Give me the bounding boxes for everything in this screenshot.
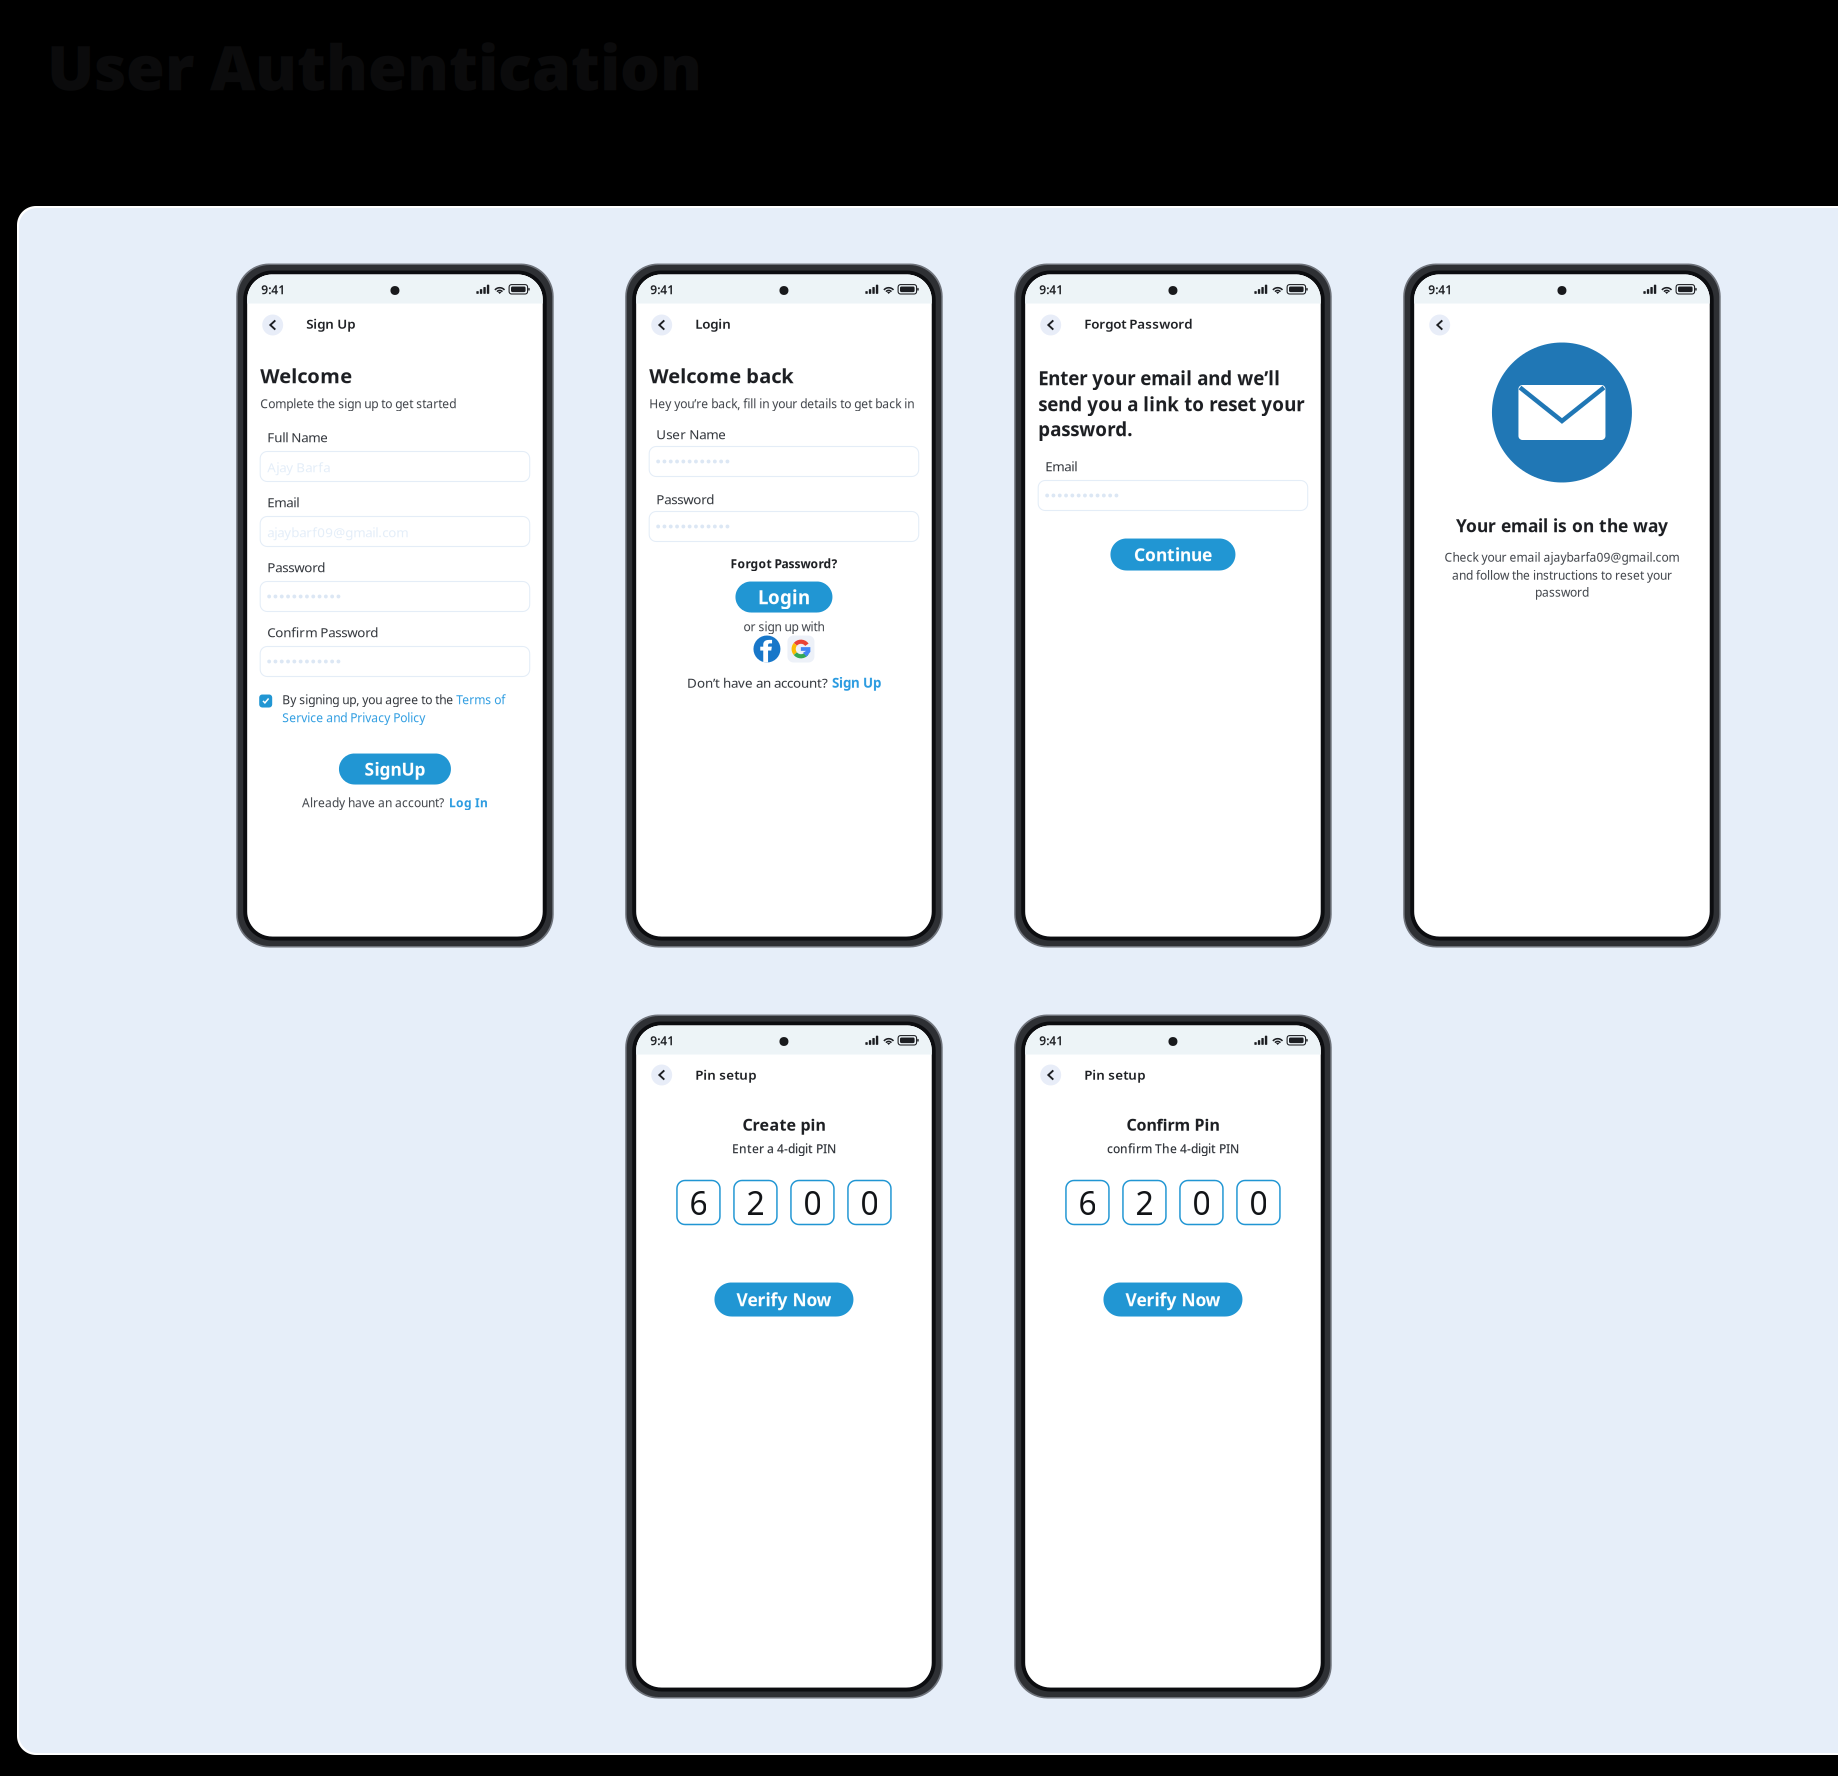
staticText: User Authentication — [47, 24, 702, 108]
staticText: 0 — [1192, 1181, 1210, 1224]
staticText: Forgot Password — [1084, 315, 1192, 332]
staticText: Confirm Password — [267, 623, 378, 641]
staticText: confirm The 4-digit PIN — [1107, 1140, 1239, 1156]
staticText: 0 — [803, 1181, 821, 1224]
staticText: 9:41 — [1039, 1032, 1063, 1048]
staticText: 0 — [1249, 1181, 1267, 1224]
staticText: Log In — [449, 794, 488, 810]
button[interactable]: Verify Now — [1103, 1282, 1242, 1316]
staticText: Service and Privacy Policy — [282, 709, 425, 725]
staticText: Complete the sign up to get started — [260, 395, 456, 411]
button[interactable]: Back — [1429, 314, 1450, 335]
staticText: Your email is on the way — [1456, 514, 1668, 537]
button[interactable]: Back — [651, 1064, 672, 1085]
staticText: Enter your email and we’ll — [1038, 366, 1280, 390]
staticText: Ajay Barfa — [267, 458, 330, 476]
staticText: 0 — [860, 1181, 878, 1224]
staticText: password — [1535, 584, 1589, 600]
staticText: Password — [267, 558, 325, 576]
staticText: 2 — [1135, 1181, 1153, 1224]
staticText: 9:41 — [650, 281, 674, 297]
staticText: SignUp — [364, 757, 425, 780]
staticText: Check your email ajaybarfa09@gmail.com — [1444, 549, 1679, 565]
staticText: 9:41 — [1039, 281, 1063, 297]
button[interactable]: Verify Now — [714, 1282, 853, 1316]
button[interactable]: Back — [1040, 314, 1061, 335]
staticText: 6 — [689, 1181, 707, 1224]
staticText: 9:41 — [650, 1032, 674, 1048]
staticText: Pin setup — [695, 1066, 756, 1083]
button[interactable]: Back — [651, 314, 672, 335]
staticText: Don’t have an account? — [687, 674, 828, 691]
staticText: or sign up with — [743, 618, 824, 634]
staticText: By signing up, you agree to the — [282, 691, 456, 707]
staticText: Continue — [1134, 543, 1212, 566]
button[interactable]: Terms of — [456, 691, 505, 707]
staticText: Login — [695, 315, 731, 332]
button[interactable]: Back — [1040, 1064, 1061, 1085]
staticText: Confirm Pin — [1126, 1114, 1219, 1135]
staticText: Already have an account? — [302, 794, 444, 810]
staticText: 2 — [746, 1181, 764, 1224]
staticText: Verify Now — [1125, 1288, 1220, 1311]
staticText: Create pin — [742, 1114, 825, 1135]
staticText: Terms of — [456, 691, 505, 707]
staticText: Hey you’re back, fill in your details to… — [649, 395, 914, 411]
button[interactable]: Continue — [1110, 538, 1235, 570]
staticText: Pin setup — [1084, 1066, 1145, 1083]
button[interactable]: Forgot Password? — [730, 555, 837, 571]
staticText: Enter a 4-digit PIN — [732, 1140, 836, 1156]
staticText: Full Name — [267, 428, 328, 446]
button[interactable]: Sign up with Google — [787, 635, 814, 662]
staticText: Sign Up — [306, 315, 355, 332]
button[interactable]: Sign Up — [832, 674, 881, 691]
button[interactable]: Back — [262, 314, 283, 335]
staticText: 6 — [1078, 1181, 1096, 1224]
button[interactable]: Agree to the terms of service — [259, 694, 272, 707]
staticText: Welcome back — [649, 362, 793, 389]
staticText: 9:41 — [1428, 281, 1452, 297]
staticText: and follow the instructions to reset you… — [1452, 567, 1672, 583]
staticText: Email — [1045, 457, 1077, 475]
staticText: Email — [267, 493, 299, 511]
button[interactable]: Sign up with Facebook — [753, 635, 780, 662]
staticText: Login — [758, 585, 810, 609]
staticText: Sign Up — [832, 674, 881, 691]
staticText: User Name — [656, 425, 726, 443]
staticText: send you a link to reset your — [1038, 392, 1304, 416]
button[interactable]: SignUp — [339, 753, 451, 784]
staticText: password. — [1038, 417, 1132, 441]
staticText: Verify Now — [736, 1288, 831, 1311]
button[interactable]: Login — [735, 581, 832, 612]
button[interactable]: Service and Privacy Policy — [282, 709, 425, 725]
staticText: 9:41 — [261, 281, 285, 297]
staticText: Welcome — [260, 362, 352, 389]
staticText: Password — [656, 490, 714, 508]
staticText: Forgot Password? — [730, 555, 837, 571]
staticText: ajaybarf09@gmail.com — [267, 523, 408, 541]
button[interactable]: Log In — [449, 794, 488, 810]
